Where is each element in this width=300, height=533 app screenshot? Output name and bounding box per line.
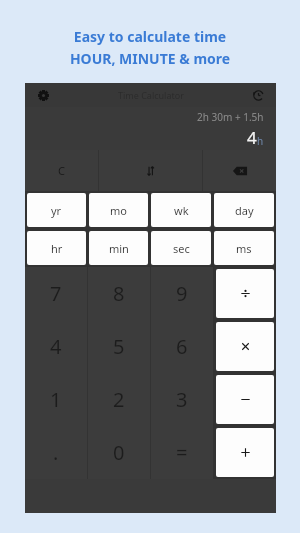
staticText: 3 [176,386,188,413]
button[interactable]: 0 [88,426,150,479]
staticText: 5 [113,333,125,360]
button[interactable]: MINUS [216,375,274,424]
button[interactable]: 8 [88,267,150,320]
staticText: 8 [113,280,125,307]
staticText: min [109,241,129,256]
button[interactable]: Backspace [203,150,276,191]
staticText: 4 [247,126,257,149]
staticText: mo [110,203,127,218]
button[interactable]: yr [27,193,86,227]
button[interactable]: 2 [88,373,150,426]
staticText: day [235,203,254,218]
button[interactable]: ms [214,231,274,265]
staticText: 1 [50,386,62,413]
staticText: 9 [176,280,188,307]
button[interactable]: DIV [216,269,274,318]
button[interactable]: 6 [151,320,213,373]
staticText: sec [173,241,190,256]
staticText: h [257,134,264,148]
staticText: 2h 30m + 1.5h [197,110,264,124]
button[interactable]: day [214,193,274,227]
button[interactable]: MUL [216,322,274,371]
button[interactable]: 9 [151,267,213,320]
staticText: 6 [176,333,188,360]
button[interactable]: History [247,84,269,106]
staticText: Easy to calculate time [0,27,300,46]
staticText: HOUR, MINUTE & more [0,49,300,68]
button[interactable]: sec [151,231,211,265]
staticText: 4 [50,333,62,360]
button[interactable]: hr [27,231,86,265]
staticText: 2 [113,386,125,413]
button[interactable]: mo [89,193,148,227]
button[interactable]: wk [151,193,211,227]
button[interactable]: PLUS [216,428,274,477]
button[interactable]: 3 [151,373,213,426]
staticText: Time Calculator [118,89,184,101]
staticText: 7 [50,280,62,307]
button[interactable]: 5 [88,320,150,373]
staticText: 0 [113,439,125,466]
staticText: wk [174,203,189,218]
staticText: . [53,439,59,466]
staticText: yr [51,203,62,218]
staticText: C [58,163,65,178]
button[interactable]: Settings [32,84,54,106]
button[interactable]: min [89,231,148,265]
staticText: = [176,439,188,466]
staticText: ms [236,241,252,256]
staticText: hr [51,241,63,256]
button[interactable]: 4 [25,320,87,373]
